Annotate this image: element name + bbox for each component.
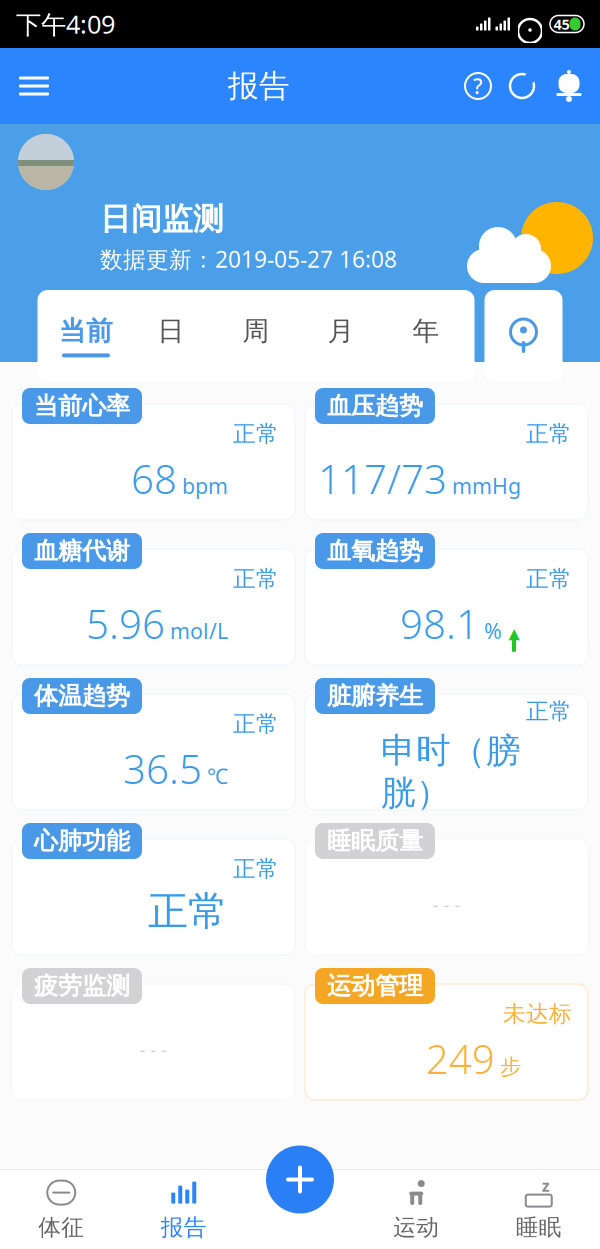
button[interactable]: 刷新 xyxy=(500,58,544,114)
staticText: 睡眠 xyxy=(516,1214,562,1241)
staticText: 体征 xyxy=(38,1214,84,1241)
staticText: 日间监测 xyxy=(100,200,224,238)
staticText: % xyxy=(484,616,502,645)
staticText: 98.1 xyxy=(400,597,479,650)
staticText: 249 xyxy=(426,1032,495,1085)
staticText: 117/73 xyxy=(318,452,447,505)
button[interactable]: 正常 xyxy=(12,388,295,520)
staticText: 报告 xyxy=(228,67,290,105)
staticText: 年 xyxy=(412,315,439,347)
staticText: 当前心率 xyxy=(34,391,130,421)
button[interactable]: 正常 xyxy=(305,533,588,665)
button[interactable]: z xyxy=(477,1172,600,1246)
staticText: 数据更新：2019-05-27 16:08 xyxy=(100,244,397,274)
button[interactable]: 运动 xyxy=(355,1172,477,1246)
staticText: 运动 xyxy=(393,1214,439,1241)
button[interactable]: 正常 xyxy=(12,823,295,955)
button[interactable]: 正常 xyxy=(12,533,295,665)
staticText: - - - xyxy=(432,893,460,916)
staticText: 血压趋势 xyxy=(327,391,423,421)
staticText: 正常 xyxy=(233,420,279,448)
button[interactable]: - - - xyxy=(305,823,588,955)
staticText: 36.5 xyxy=(123,742,202,795)
staticText: 申时（膀胱） xyxy=(381,729,521,814)
button[interactable]: 正常 xyxy=(12,678,295,810)
staticText: mol/L xyxy=(170,616,228,645)
staticText: 正常 xyxy=(233,710,279,738)
button[interactable]: 正常 xyxy=(305,388,588,520)
button[interactable]: 年 xyxy=(383,290,468,382)
button[interactable]: 周 xyxy=(213,290,298,382)
staticText: - - - xyxy=(139,1038,167,1061)
staticText: 正常 xyxy=(526,420,572,448)
staticText: 血氧趋势 xyxy=(327,536,423,566)
button[interactable]: 日 xyxy=(128,290,213,382)
staticText: ? xyxy=(473,72,483,100)
staticText: 正常 xyxy=(148,887,228,936)
button[interactable]: 帮助 xyxy=(456,58,500,114)
button[interactable]: - - - xyxy=(12,968,295,1100)
button[interactable]: 正常 xyxy=(305,678,588,810)
staticText: 正常 xyxy=(526,697,572,725)
staticText: 日 xyxy=(157,315,184,347)
staticText: 5.96 xyxy=(86,597,165,650)
staticText: 血糖代谢 xyxy=(34,536,130,566)
staticText: 正常 xyxy=(233,565,279,593)
staticText: 月 xyxy=(327,315,354,347)
staticText: 正常 xyxy=(526,565,572,593)
staticText: 疲劳监测 xyxy=(34,971,130,1001)
staticText: 周 xyxy=(242,315,269,347)
staticText: 心肺功能 xyxy=(34,826,130,856)
button[interactable]: 菜单 xyxy=(6,58,62,114)
button[interactable]: 添加 xyxy=(261,1140,339,1218)
staticText: 步 xyxy=(500,1054,521,1080)
button[interactable]: 未达标 xyxy=(305,968,588,1100)
staticText: 睡眠质量 xyxy=(327,826,423,856)
button[interactable]: 报告 xyxy=(122,1172,245,1246)
staticText: 脏腑养生 xyxy=(327,681,423,711)
staticText: bpm xyxy=(182,471,228,500)
staticText: ℃ xyxy=(207,761,228,790)
staticText: 运动管理 xyxy=(327,971,423,1001)
staticText: ▲ xyxy=(508,625,519,642)
button[interactable]: 通知 xyxy=(544,58,594,114)
staticText: 下午4:09 xyxy=(16,7,115,41)
staticText: 当前 xyxy=(59,315,113,347)
staticText: 正常 xyxy=(233,855,279,883)
staticText: 未达标 xyxy=(503,1000,572,1028)
button[interactable]: 月 xyxy=(298,290,383,382)
button[interactable]: 位置 xyxy=(484,290,562,382)
staticText: z xyxy=(542,1175,550,1196)
staticText: mmHg xyxy=(452,471,521,500)
staticText: 报告 xyxy=(161,1214,207,1241)
button[interactable]: 当前 xyxy=(43,290,128,382)
staticText: 68 xyxy=(131,452,177,505)
button[interactable]: 体征 xyxy=(0,1172,122,1246)
staticText: 体温趋势 xyxy=(34,681,130,711)
staticText: 45 xyxy=(553,14,569,34)
